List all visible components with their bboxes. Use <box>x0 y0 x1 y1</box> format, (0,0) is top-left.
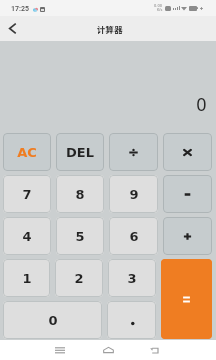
staticText: 7 <box>22 187 32 202</box>
button[interactable]: 7 <box>3 175 51 213</box>
button[interactable]: 9 <box>109 175 158 213</box>
staticText: 8 <box>75 187 85 202</box>
button[interactable]: 3 <box>108 259 156 297</box>
staticText: 0 <box>48 313 58 328</box>
staticText: 6 <box>129 229 139 244</box>
button[interactable]: AC <box>3 133 51 171</box>
staticText: 17:25 <box>11 5 30 13</box>
button[interactable]: 1 <box>3 259 50 297</box>
button[interactable]: 0 <box>3 301 102 339</box>
staticText: 0 <box>196 95 207 115</box>
staticText: 9 <box>129 187 139 202</box>
button[interactable]: Minus <box>163 175 212 213</box>
button[interactable]: Plus <box>163 217 212 255</box>
staticText: 4 <box>22 229 32 244</box>
button[interactable]: 2 <box>55 259 103 297</box>
staticText: AC <box>17 145 37 160</box>
button[interactable]: 4 <box>3 217 51 255</box>
button[interactable]: Back <box>0 16 25 41</box>
button[interactable]: Home <box>94 340 122 360</box>
staticText: 0.00 <box>154 4 163 8</box>
button[interactable]: Multiply <box>163 133 212 171</box>
button[interactable]: 6 <box>109 217 158 255</box>
staticText: 1 <box>22 271 32 286</box>
button[interactable]: Equals <box>161 259 212 339</box>
button[interactable]: 8 <box>56 175 104 213</box>
staticText: 5 <box>75 229 85 244</box>
button[interactable]: Recent apps <box>46 340 74 360</box>
button[interactable]: Back <box>141 340 169 360</box>
staticText: K/s <box>157 8 163 12</box>
staticText: 3 <box>127 271 137 286</box>
button[interactable]: Divide <box>109 133 158 171</box>
button[interactable]: Decimal point <box>107 301 156 339</box>
staticText: 2 <box>74 271 84 286</box>
button[interactable]: 5 <box>56 217 104 255</box>
button[interactable]: DEL <box>56 133 104 171</box>
staticText: DEL <box>66 145 94 160</box>
staticText: 计算器 <box>97 23 123 35</box>
